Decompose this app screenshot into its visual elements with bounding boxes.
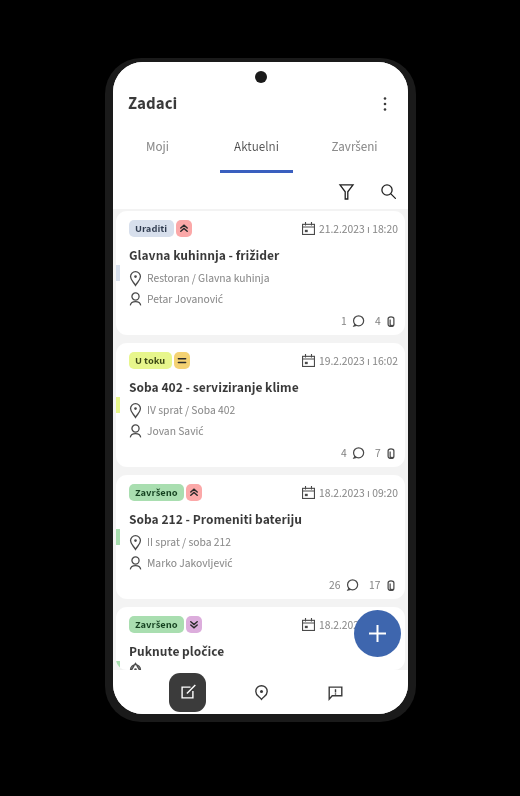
staticText: Aktuelni: [234, 138, 279, 157]
staticText: 18.2.2023 ı 09:20: [319, 617, 398, 633]
button[interactable]: More options: [372, 91, 398, 117]
staticText: U toku: [135, 353, 166, 368]
staticText: 4: [375, 313, 381, 329]
staticText: 17: [369, 577, 381, 593]
staticText: Završeni: [331, 138, 378, 157]
staticText: 18.2.2023 ı 09:20: [319, 485, 398, 501]
staticText: 4: [341, 445, 347, 461]
button[interactable]: Završeno: [116, 607, 405, 670]
button[interactable]: Tasks: [150, 670, 224, 714]
staticText: Jovan Savić: [147, 423, 204, 439]
staticText: Moji: [146, 138, 169, 157]
button[interactable]: Filter: [333, 178, 359, 204]
staticText: Završeno: [135, 485, 178, 500]
staticText: Završeno: [135, 617, 178, 632]
staticText: 19.2.2023 ı 16:02: [319, 353, 398, 369]
button[interactable]: Moji: [113, 129, 207, 173]
staticText: Uraditi: [135, 221, 168, 236]
staticText: 26: [329, 577, 341, 593]
button[interactable]: Završeno: [116, 475, 405, 599]
button[interactable]: Reports: [298, 670, 372, 714]
staticText: Soba 212 - Promeniti bateriju: [129, 510, 302, 529]
button[interactable]: Search: [375, 178, 401, 204]
staticText: Petar Jovanović: [147, 291, 224, 307]
button[interactable]: Locations: [224, 670, 298, 714]
staticText: 21.2.2023 ı 18:20: [319, 221, 398, 237]
button[interactable]: Završeni: [305, 129, 403, 173]
button[interactable]: Uraditi: [116, 211, 405, 335]
staticText: Soba 402 - serviziranje klime: [129, 378, 299, 397]
staticText: Zadaci: [128, 92, 178, 116]
staticText: Restoran / Glavna kuhinja: [147, 270, 270, 286]
staticText: 1: [341, 313, 347, 329]
button[interactable]: U toku: [116, 343, 405, 467]
staticText: Puknute pločice: [129, 642, 225, 661]
button[interactable]: Add task: [354, 610, 401, 657]
staticText: Glavna kuhinnja - frižider: [129, 246, 280, 265]
staticText: 7: [375, 445, 381, 461]
staticText: II sprat / soba 212: [147, 534, 231, 550]
staticText: Marko Jakovljević: [147, 555, 233, 571]
button[interactable]: Aktuelni: [207, 129, 305, 173]
staticText: IV sprat / Soba 402: [147, 402, 236, 418]
